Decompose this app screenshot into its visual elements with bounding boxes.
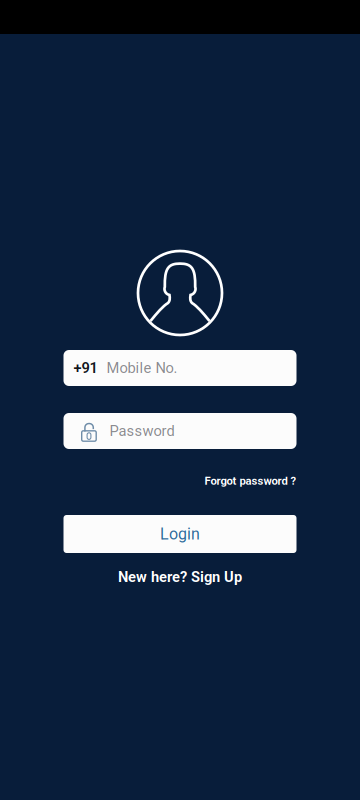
staticText: New here? Sign Up [118,568,242,586]
staticText: Mobile No. [106,359,177,377]
staticText: Forgot password ? [204,474,296,488]
button[interactable]: +91 [63,350,296,386]
button[interactable]: Password [63,413,296,449]
button[interactable]: Forgot password ? [63,472,296,490]
staticText: Password [109,422,174,440]
button[interactable]: New here? Sign Up [118,567,242,587]
staticText: Login [160,525,200,543]
button[interactable]: Login [63,515,296,553]
staticText: +91 [73,359,97,377]
